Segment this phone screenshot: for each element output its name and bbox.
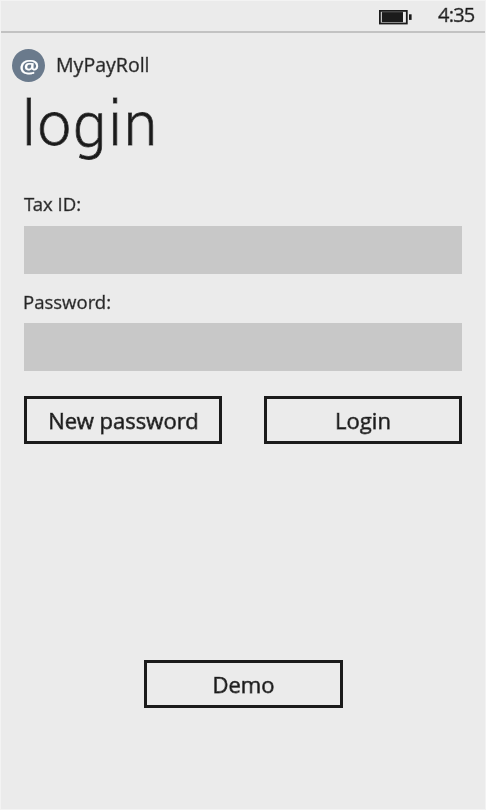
staticText: Tax ID: [24, 191, 82, 216]
staticText: Demo [212, 669, 275, 699]
button[interactable]: Login [264, 396, 462, 444]
button[interactable]: New password [24, 396, 222, 444]
staticText: Password: [23, 289, 112, 314]
staticText: Tax ID: [24, 191, 82, 216]
staticText: 4:35 [438, 1, 475, 28]
staticText: login [22, 82, 160, 169]
staticText: 4:35 [438, 1, 475, 28]
staticText: New password [48, 405, 199, 435]
staticText: New password [48, 405, 199, 435]
staticText: MyPayRoll [56, 51, 150, 78]
staticText: Password: [23, 289, 112, 314]
button[interactable]: MyPayRoll app icon [12, 49, 45, 82]
button[interactable]: Demo [144, 660, 343, 708]
staticText: @ [19, 54, 39, 79]
staticText: MyPayRoll [56, 51, 150, 78]
other: Battery [379, 10, 412, 26]
staticText: Login [335, 405, 391, 435]
staticText: Demo [212, 669, 275, 699]
staticText: login [22, 82, 160, 169]
staticText: Login [335, 405, 391, 435]
